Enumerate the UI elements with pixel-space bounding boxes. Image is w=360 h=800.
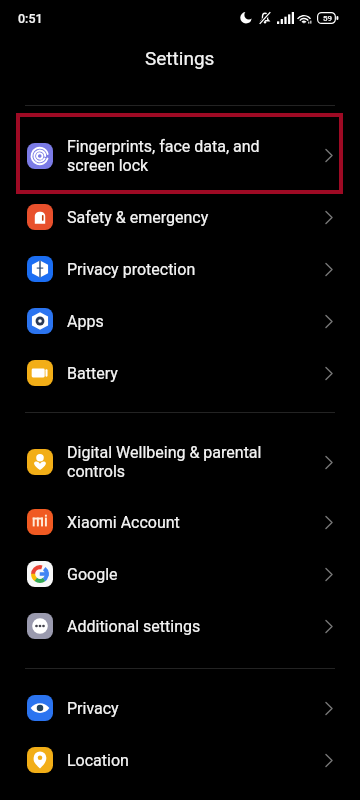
- staticText: 59: [323, 14, 333, 23]
- button[interactable]: Privacy protection: [0, 243, 360, 295]
- staticText: Additional settings: [67, 617, 325, 636]
- staticText: Privacy protection: [67, 260, 325, 279]
- staticText: Fingerprints, face data, and screen lock: [67, 137, 325, 175]
- button[interactable]: Privacy: [0, 682, 360, 734]
- button[interactable]: Apps: [0, 295, 360, 347]
- staticText: Xiaomi Account: [67, 513, 325, 532]
- staticText: 0:51: [18, 11, 43, 26]
- button[interactable]: Safety & emergency: [0, 191, 360, 243]
- staticText: Settings: [145, 47, 215, 69]
- button[interactable]: Xiaomi Account: [0, 496, 360, 548]
- staticText: Apps: [67, 312, 325, 331]
- staticText: Battery: [67, 364, 325, 383]
- staticText: Google: [67, 565, 325, 584]
- staticText: Privacy: [67, 699, 325, 718]
- staticText: Safety & emergency: [67, 208, 325, 227]
- staticText: Digital Wellbeing & parental controls: [67, 443, 325, 481]
- button[interactable]: Additional settings: [0, 600, 360, 652]
- button[interactable]: Digital Wellbeing & parental controls: [0, 432, 360, 492]
- button[interactable]: Battery: [0, 347, 360, 399]
- button[interactable]: Google: [0, 548, 360, 600]
- button[interactable]: Fingerprints, face data, and screen lock: [0, 125, 360, 186]
- staticText: Location: [67, 751, 325, 770]
- button[interactable]: Location: [0, 734, 360, 786]
